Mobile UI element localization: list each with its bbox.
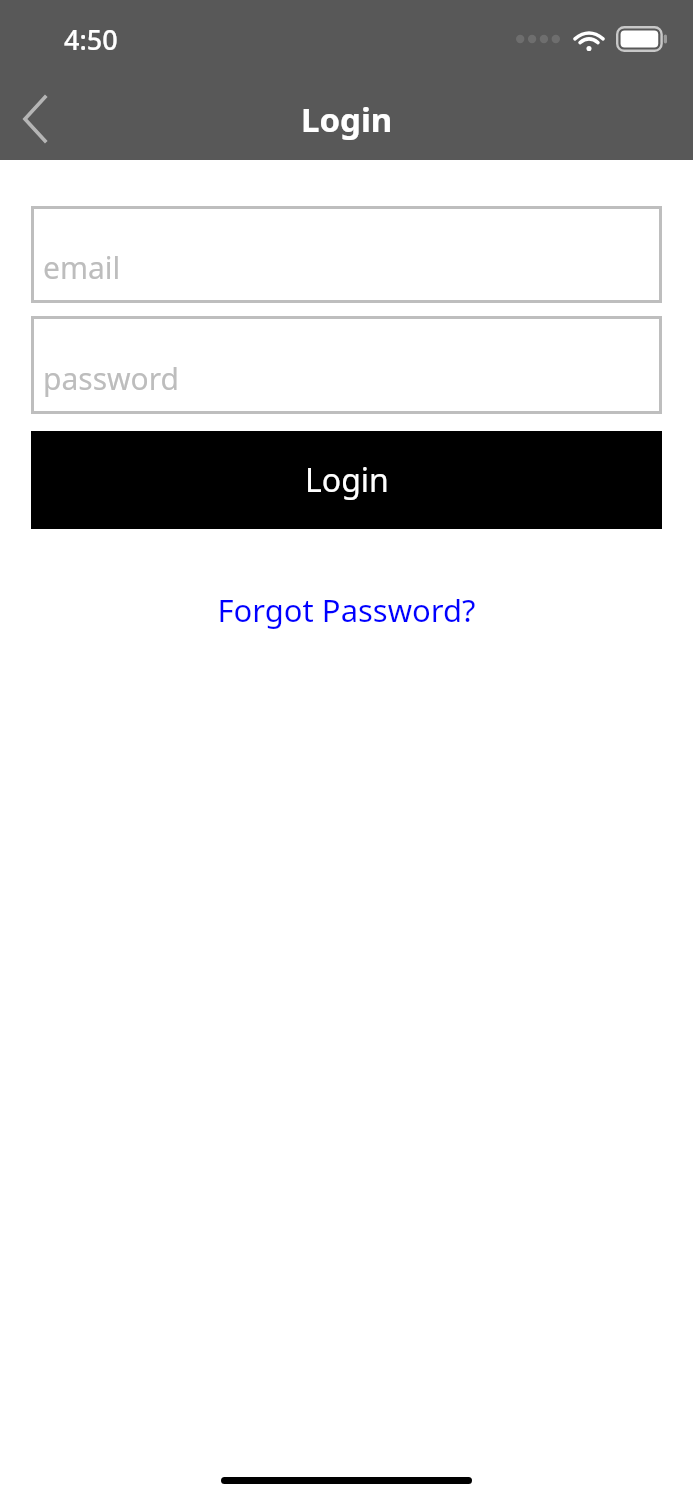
button[interactable]: Back <box>0 84 70 154</box>
button[interactable]: Login <box>31 431 662 529</box>
staticText: password <box>43 358 179 399</box>
staticText: Login <box>305 458 389 502</box>
staticText: Login <box>301 97 393 142</box>
button[interactable]: email <box>31 206 662 303</box>
staticText: Forgot Password? <box>217 589 476 631</box>
button[interactable]: password <box>31 316 662 414</box>
staticText: email <box>43 247 121 288</box>
button[interactable]: Forgot Password? <box>205 585 488 635</box>
staticText: 4:50 <box>64 21 118 58</box>
